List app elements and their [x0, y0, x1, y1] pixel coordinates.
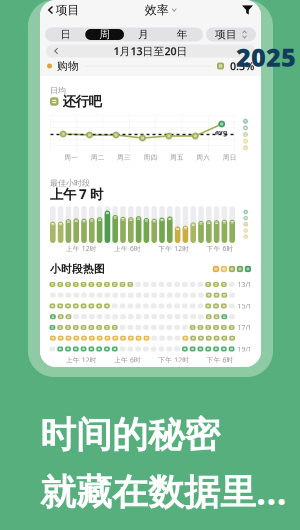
- staticText: 19/1: [237, 344, 251, 353]
- button[interactable]: 周: [85, 29, 124, 40]
- staticText: 日均: [50, 86, 66, 95]
- staticText: 小时段热图: [50, 262, 105, 275]
- staticText: 周一: [64, 153, 78, 162]
- staticText: 上午 6时: [114, 355, 141, 364]
- button[interactable]: 项目: [206, 27, 256, 41]
- staticText: 下午 12时: [158, 244, 189, 253]
- button[interactable]: 项目: [46, 1, 81, 19]
- staticText: 上午 7 时: [50, 185, 103, 203]
- staticText: 月: [138, 28, 149, 41]
- staticText: 周: [99, 28, 110, 41]
- staticText: 周日: [223, 153, 237, 162]
- staticText: 项目: [215, 28, 237, 41]
- staticText: 周六: [196, 153, 210, 162]
- button[interactable]: 年: [163, 29, 202, 40]
- staticText: 周四: [143, 153, 157, 162]
- staticText: 项目: [55, 3, 79, 17]
- button[interactable]: 日: [46, 29, 85, 40]
- button[interactable]: 上一周: [52, 45, 60, 57]
- staticText: 上午 12时: [66, 355, 97, 364]
- staticText: 下午 6时: [206, 355, 233, 364]
- staticText: 周五: [170, 153, 184, 162]
- staticText: 13/1: [237, 280, 251, 289]
- staticText: 1月13日至20日: [113, 44, 187, 58]
- staticText: 上午 6时: [114, 244, 141, 253]
- staticText: 下午 6时: [206, 244, 233, 253]
- staticText: 2025: [236, 40, 296, 74]
- staticText: 就藏在数据里…: [40, 467, 287, 515]
- button[interactable]: 效率: [145, 1, 177, 19]
- staticText: 17/1: [237, 323, 251, 332]
- button[interactable]: 筛选: [240, 1, 255, 19]
- staticText: 15/1: [237, 301, 251, 310]
- staticText: 还行吧: [62, 93, 101, 110]
- staticText: avg: [215, 127, 227, 136]
- staticText: 年: [177, 28, 188, 41]
- staticText: 上午 12时: [66, 244, 97, 253]
- staticText: 效率: [145, 3, 169, 17]
- staticText: 时间的秘密: [40, 413, 220, 457]
- staticText: 周三: [117, 153, 131, 162]
- staticText: 下午 12时: [158, 355, 189, 364]
- button[interactable]: 月: [124, 29, 163, 40]
- staticText: 最佳小时段: [50, 178, 90, 188]
- staticText: 周二: [91, 153, 105, 162]
- staticText: 日: [60, 28, 71, 41]
- staticText: 0.3%: [230, 59, 254, 73]
- staticText: 购物: [57, 59, 79, 72]
